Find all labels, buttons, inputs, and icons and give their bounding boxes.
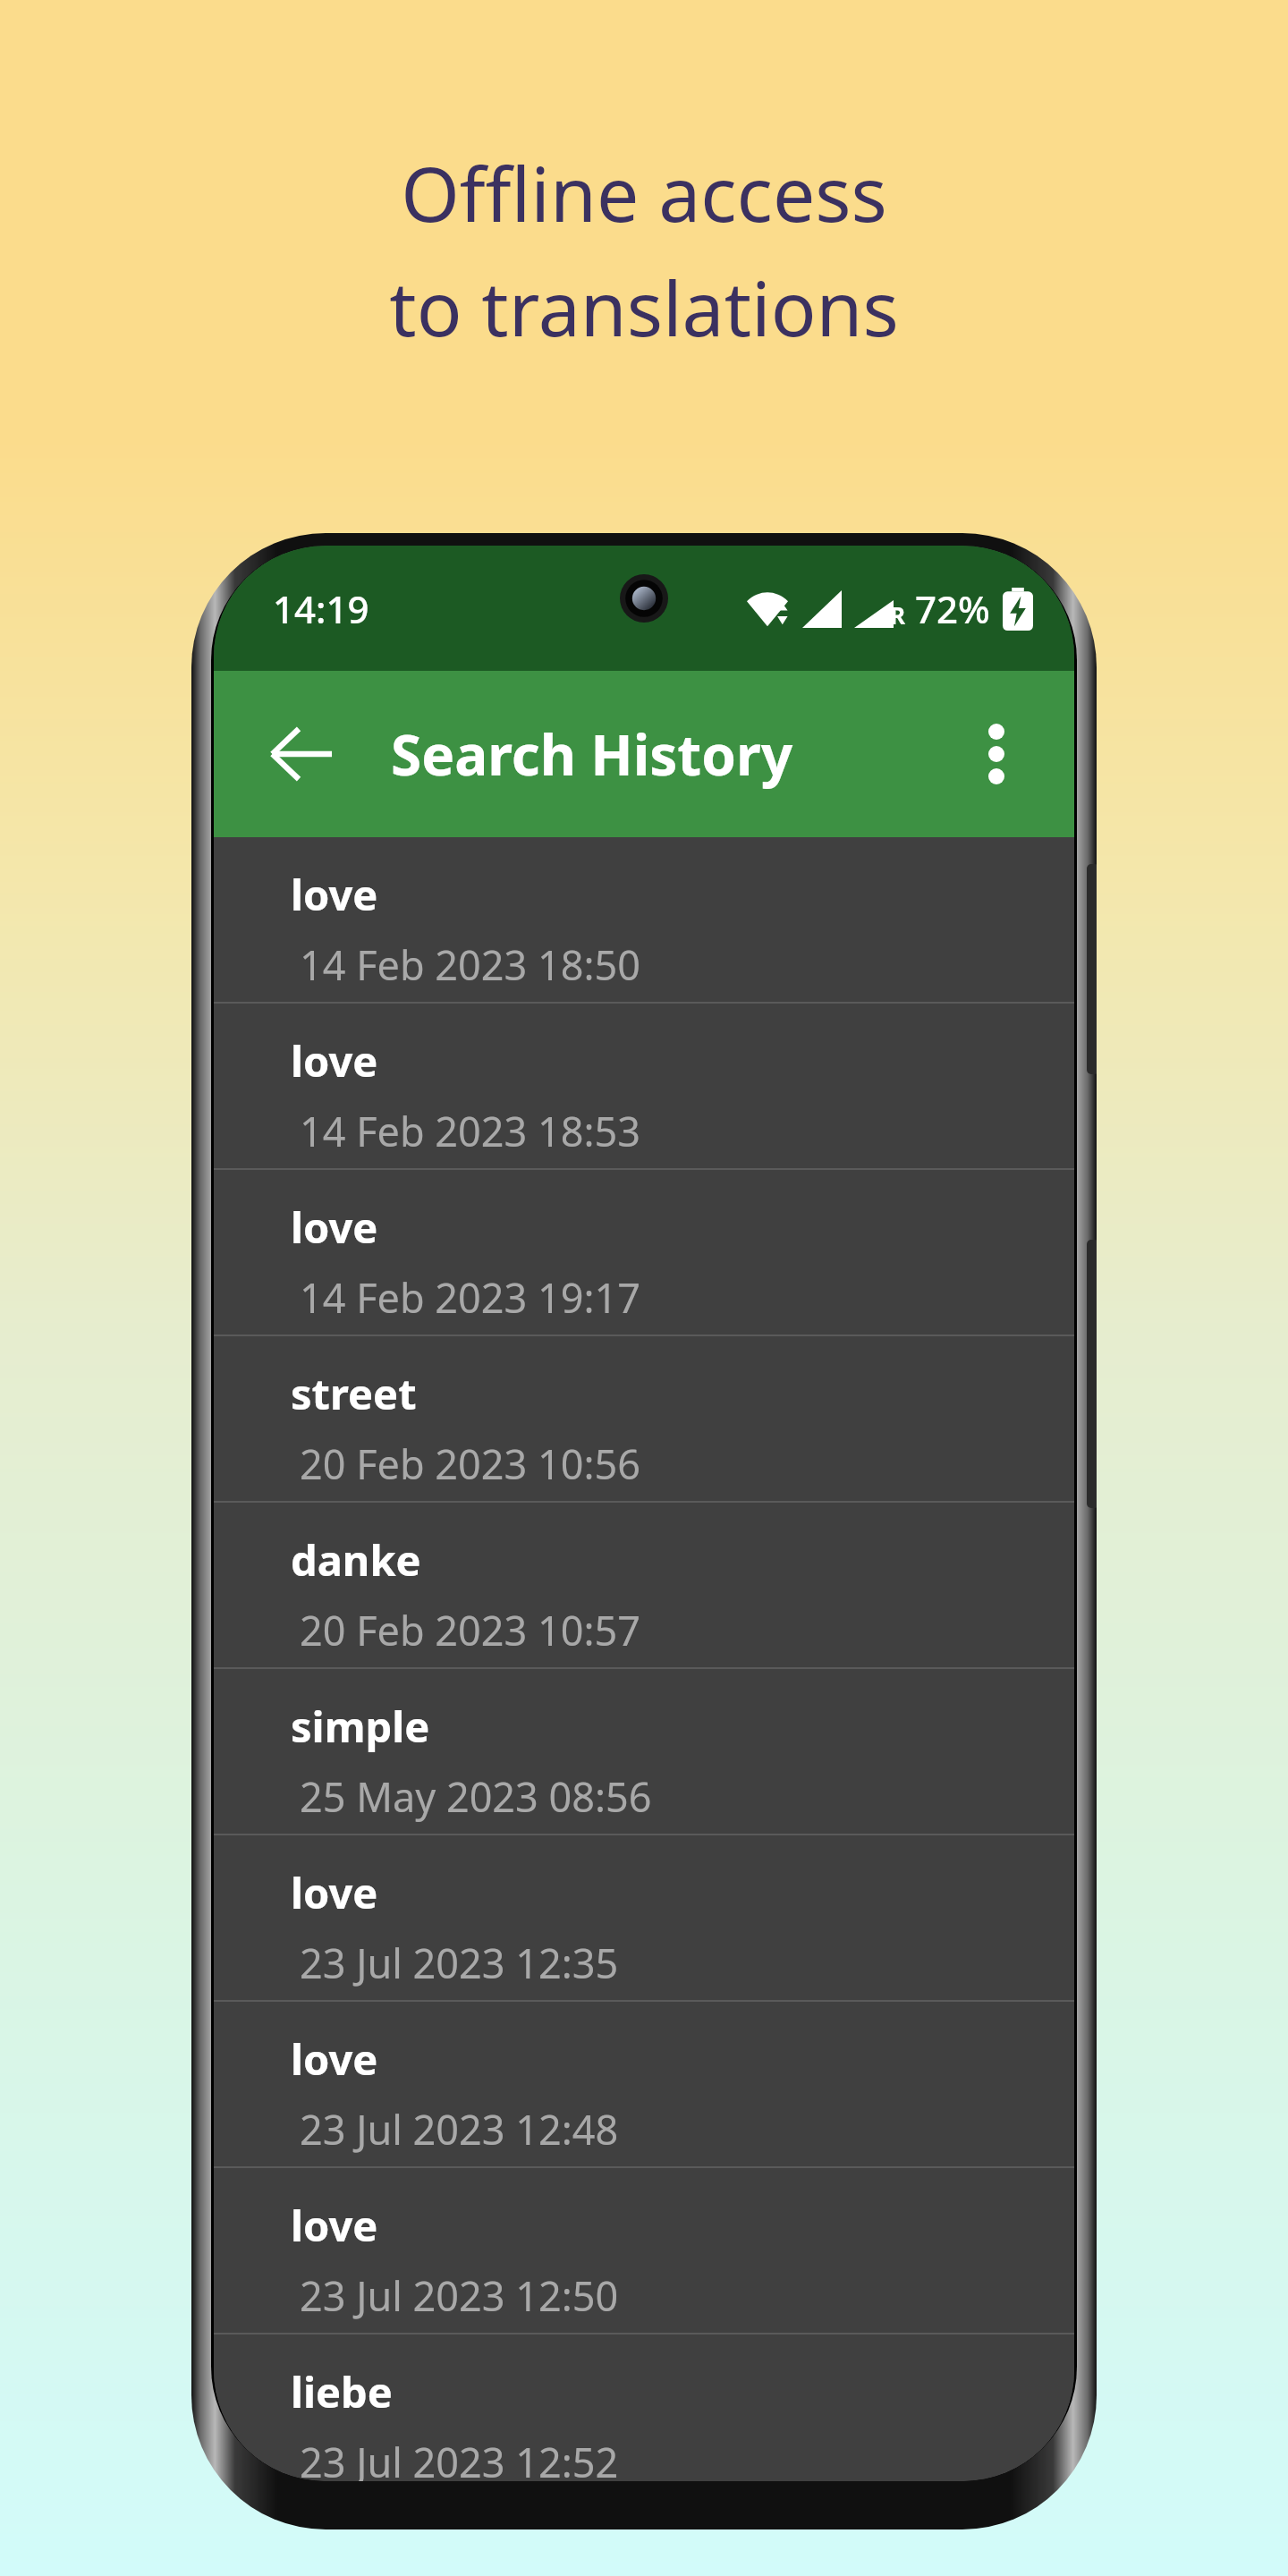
button[interactable]: More options: [938, 696, 1055, 812]
button[interactable]: love: [214, 1835, 1074, 2000]
staticText: Search History: [391, 716, 793, 792]
button[interactable]: love: [214, 837, 1074, 1002]
staticText: 14 Feb 2023 19:17: [300, 1270, 640, 1325]
button[interactable]: love: [214, 2168, 1074, 2333]
button[interactable]: danke: [214, 1503, 1074, 1667]
button[interactable]: Back: [239, 691, 364, 817]
staticText: 23 Jul 2023 12:50: [300, 2268, 619, 2323]
staticText: danke: [291, 1531, 421, 1589]
staticText: 25 May 2023 08:56: [300, 1769, 652, 1824]
staticText: 14 Feb 2023 18:53: [300, 1104, 640, 1158]
staticText: 14:19: [273, 583, 369, 634]
staticText: love: [291, 866, 378, 923]
staticText: love: [291, 1864, 378, 1921]
button[interactable]: simple: [214, 1669, 1074, 1834]
staticText: 20 Feb 2023 10:56: [300, 1436, 640, 1491]
button[interactable]: love: [214, 1170, 1074, 1335]
staticText: 72%: [915, 583, 990, 634]
button[interactable]: liebe: [214, 2334, 1074, 2481]
button[interactable]: love: [214, 1004, 1074, 1168]
staticText: 14 Feb 2023 18:50: [300, 937, 640, 992]
staticText: 23 Jul 2023 12:48: [300, 2102, 619, 2157]
staticText: to translations: [389, 256, 899, 358]
staticText: 20 Feb 2023 10:57: [300, 1603, 640, 1657]
button[interactable]: love: [214, 2002, 1074, 2166]
staticText: love: [291, 1032, 378, 1089]
staticText: liebe: [291, 2363, 393, 2420]
staticText: love: [291, 2197, 378, 2254]
staticText: 23 Jul 2023 12:35: [300, 1936, 619, 1990]
staticText: love: [291, 2030, 378, 2088]
staticText: 23 Jul 2023 12:52: [300, 2435, 619, 2481]
staticText: street: [291, 1365, 417, 1422]
staticText: R: [890, 599, 906, 631]
staticText: love: [291, 1199, 378, 1256]
staticText: Offline access: [401, 141, 887, 243]
staticText: simple: [291, 1698, 430, 1755]
button[interactable]: street: [214, 1336, 1074, 1501]
